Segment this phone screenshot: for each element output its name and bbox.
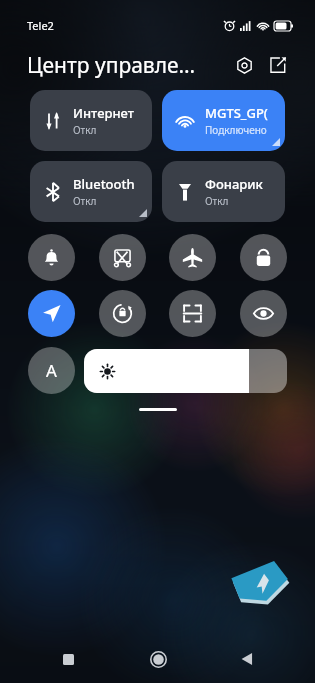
- button[interactable]: Lock screen: [240, 234, 287, 281]
- staticText: Подключено: [205, 123, 267, 137]
- button[interactable]: MGTS_GP(: [162, 90, 285, 151]
- staticText: Tele2: [27, 18, 54, 33]
- button[interactable]: Silent mode: [28, 234, 75, 281]
- button[interactable]: Home: [136, 637, 180, 681]
- button[interactable]: Edit: [263, 50, 293, 80]
- staticText: Центр управле…: [27, 51, 229, 80]
- staticText: Откл: [73, 123, 97, 137]
- button[interactable]: Интернет: [30, 90, 152, 151]
- staticText: Откл: [205, 194, 229, 208]
- staticText: MGTS_GP(: [205, 104, 268, 122]
- button[interactable]: Airplane mode: [169, 234, 216, 281]
- button[interactable]: Location: [28, 290, 75, 337]
- staticText: Интернет: [73, 104, 134, 122]
- staticText: Фонарик: [205, 175, 263, 193]
- button[interactable]: Фонарик: [162, 161, 285, 222]
- button[interactable]: Scan code: [169, 290, 216, 337]
- button[interactable]: Back: [225, 637, 269, 681]
- button[interactable]: Auto brightness: [28, 347, 75, 394]
- staticText: A: [46, 359, 57, 382]
- staticText: Bluetooth: [73, 175, 135, 193]
- button[interactable]: Reading mode: [240, 290, 287, 337]
- button[interactable]: Settings: [229, 50, 259, 80]
- button[interactable]: Brightness: [84, 349, 287, 393]
- button[interactable]: Bluetooth: [30, 161, 152, 222]
- button[interactable]: Auto rotate: [99, 290, 146, 337]
- staticText: Откл: [73, 194, 97, 208]
- button[interactable]: Recents: [46, 637, 90, 681]
- button[interactable]: Screenshot: [99, 234, 146, 281]
